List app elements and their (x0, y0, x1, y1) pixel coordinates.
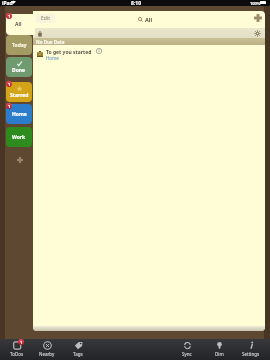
button[interactable]: Add list (17, 157, 23, 163)
button[interactable]: 1 (2, 339, 32, 360)
staticText: 1 (8, 82, 11, 87)
button[interactable]: Delete (37, 31, 43, 37)
staticText: 8:10 (131, 0, 141, 6)
button[interactable]: Sync (172, 339, 202, 360)
staticText: Starred (10, 92, 29, 99)
staticText: Today (12, 42, 27, 49)
button[interactable]: Settings (254, 30, 261, 37)
button[interactable]: Today (6, 35, 32, 55)
staticText: 1 (8, 104, 11, 109)
staticText: Done (12, 67, 26, 74)
staticText: ToDos (10, 351, 24, 357)
staticText: Home (12, 111, 27, 118)
staticText: Sync (182, 351, 192, 357)
staticText: Nearby (39, 351, 55, 357)
staticText: No Due Date (36, 39, 65, 45)
button[interactable]: Edit (36, 14, 55, 23)
staticText: All (145, 16, 153, 23)
staticText: Settings (242, 351, 260, 357)
button[interactable]: Nearby (32, 339, 62, 360)
staticText: Dim (215, 351, 224, 357)
button[interactable]: Settings (236, 339, 266, 360)
button[interactable]: Starred (6, 82, 32, 102)
staticText: 1 (8, 14, 11, 19)
button[interactable]: Tags (63, 339, 93, 360)
button[interactable]: Add todo (254, 14, 262, 22)
button[interactable]: To get you started (33, 45, 265, 62)
staticText: iPad (2, 0, 13, 6)
button[interactable]: Dim (204, 339, 234, 360)
staticText: Tags (73, 351, 83, 357)
staticText: 100% (250, 1, 261, 6)
staticText: To get you started (46, 49, 92, 56)
button[interactable]: Home (6, 104, 32, 124)
staticText: Work (12, 134, 26, 141)
button[interactable]: All (6, 14, 35, 35)
button[interactable]: Work (6, 127, 32, 147)
button[interactable]: Done (6, 57, 32, 77)
staticText: Edit (41, 15, 50, 22)
staticText: All (15, 21, 22, 28)
staticText: 1 (20, 340, 23, 345)
staticText: Home (46, 55, 59, 61)
